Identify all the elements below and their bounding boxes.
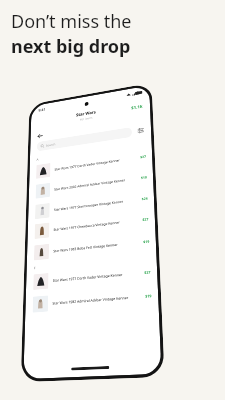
staticText: Star Wars 1977 Stormtrooper Vintage Kenn… xyxy=(54,197,139,212)
button[interactable]: Star Wars 1977 Chewbacca Vintage Kenner xyxy=(27,208,155,242)
button[interactable]: Back xyxy=(35,130,45,142)
staticText: $27 xyxy=(140,154,146,159)
staticText: $19 xyxy=(141,175,147,180)
staticText: Star Wars 1982 Admiral Ackbar Vintage Ke… xyxy=(52,294,143,305)
button[interactable]: Search xyxy=(37,127,132,152)
staticText: Star Wars xyxy=(76,109,96,117)
staticText: 9:41 xyxy=(38,107,46,113)
staticText: A xyxy=(36,157,39,161)
staticText: Star Wars 1983 Boba Fett Vintage Kenner xyxy=(53,240,141,253)
staticText: F xyxy=(34,265,35,270)
button[interactable]: Star Wars 1977 Darth Vader Vintage Kenne… xyxy=(26,260,158,293)
staticText: Star Wars 1977 Darth Vader Vintage Kenne… xyxy=(53,270,142,283)
button[interactable]: Star Wars 1982 Admiral Ackbar Vintage Ke… xyxy=(25,282,159,317)
staticText: $24 xyxy=(142,196,148,201)
staticText: $19 xyxy=(143,239,150,244)
staticText: Star Wars 1977 Chewbacca Vintage Kenner xyxy=(54,217,140,232)
staticText: next big drop xyxy=(11,34,131,59)
staticText: Star Wars 1977 Darth Vader Vintage Kenne… xyxy=(54,155,138,171)
staticText: $27 xyxy=(144,269,151,275)
staticText: $1.1k xyxy=(131,103,143,110)
staticText: Don’t miss the xyxy=(11,9,132,34)
staticText: Star Wars 2002 Admiral Ackbar Vintage Ke… xyxy=(54,176,139,191)
button[interactable]: Star Wars 2002 Admiral Ackbar Vintage Ke… xyxy=(29,165,154,203)
staticText: Search xyxy=(46,142,56,147)
button[interactable]: Sort and filter xyxy=(136,126,145,135)
staticText: $19 xyxy=(145,293,152,298)
staticText: 401 items xyxy=(80,116,92,121)
button[interactable]: Star Wars 1977 Darth Vader Vintage Kenne… xyxy=(29,146,153,182)
staticText: $27 xyxy=(142,216,149,222)
button[interactable]: $1.1k xyxy=(131,103,143,110)
button[interactable]: Star Wars 1977 Stormtrooper Vintage Kenn… xyxy=(28,187,154,223)
button[interactable]: Star Wars 1983 Boba Fett Vintage Kenner xyxy=(27,229,156,265)
